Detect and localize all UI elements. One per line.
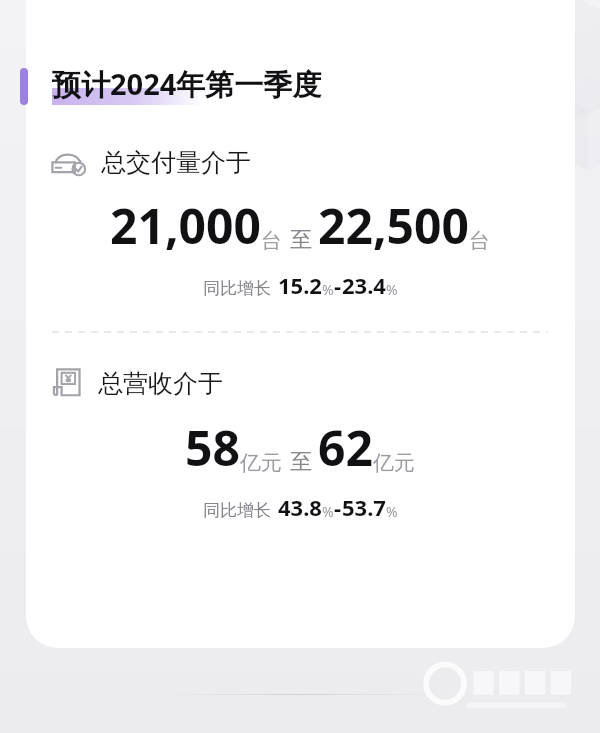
staticText: 23.4: [342, 270, 386, 300]
staticText: 台: [261, 228, 282, 254]
staticText: 台: [469, 228, 490, 254]
staticText: 至: [290, 448, 312, 476]
staticText: 21,000: [110, 193, 261, 258]
other: Vehicle deliveries: [50, 148, 90, 178]
staticText: %: [386, 280, 398, 299]
staticText: %: [322, 502, 334, 521]
staticText: 亿元: [240, 450, 282, 476]
staticText: 预计2024年第一季度: [52, 64, 322, 104]
staticText: 总营收介于: [98, 368, 223, 399]
other: Total revenue: [52, 366, 84, 400]
staticText: -: [334, 492, 342, 522]
staticText: -: [334, 270, 342, 300]
staticText: 58: [185, 415, 240, 480]
staticText: 62: [318, 415, 373, 480]
button[interactable]: Total revenue: [0, 366, 600, 400]
staticText: 22,500: [318, 193, 469, 258]
staticText: 同比增长: [203, 278, 271, 299]
staticText: 15.2: [278, 270, 322, 300]
staticText: 43.8: [278, 492, 322, 522]
staticText: 总交付量介于: [101, 147, 251, 178]
staticText: 亿元: [373, 450, 415, 476]
button[interactable]: Vehicle deliveries: [0, 147, 600, 178]
staticText: 同比增长: [203, 500, 271, 521]
staticText: %: [386, 502, 398, 521]
staticText: %: [322, 280, 334, 299]
staticText: 至: [290, 226, 312, 254]
staticText: 53.7: [342, 492, 386, 522]
